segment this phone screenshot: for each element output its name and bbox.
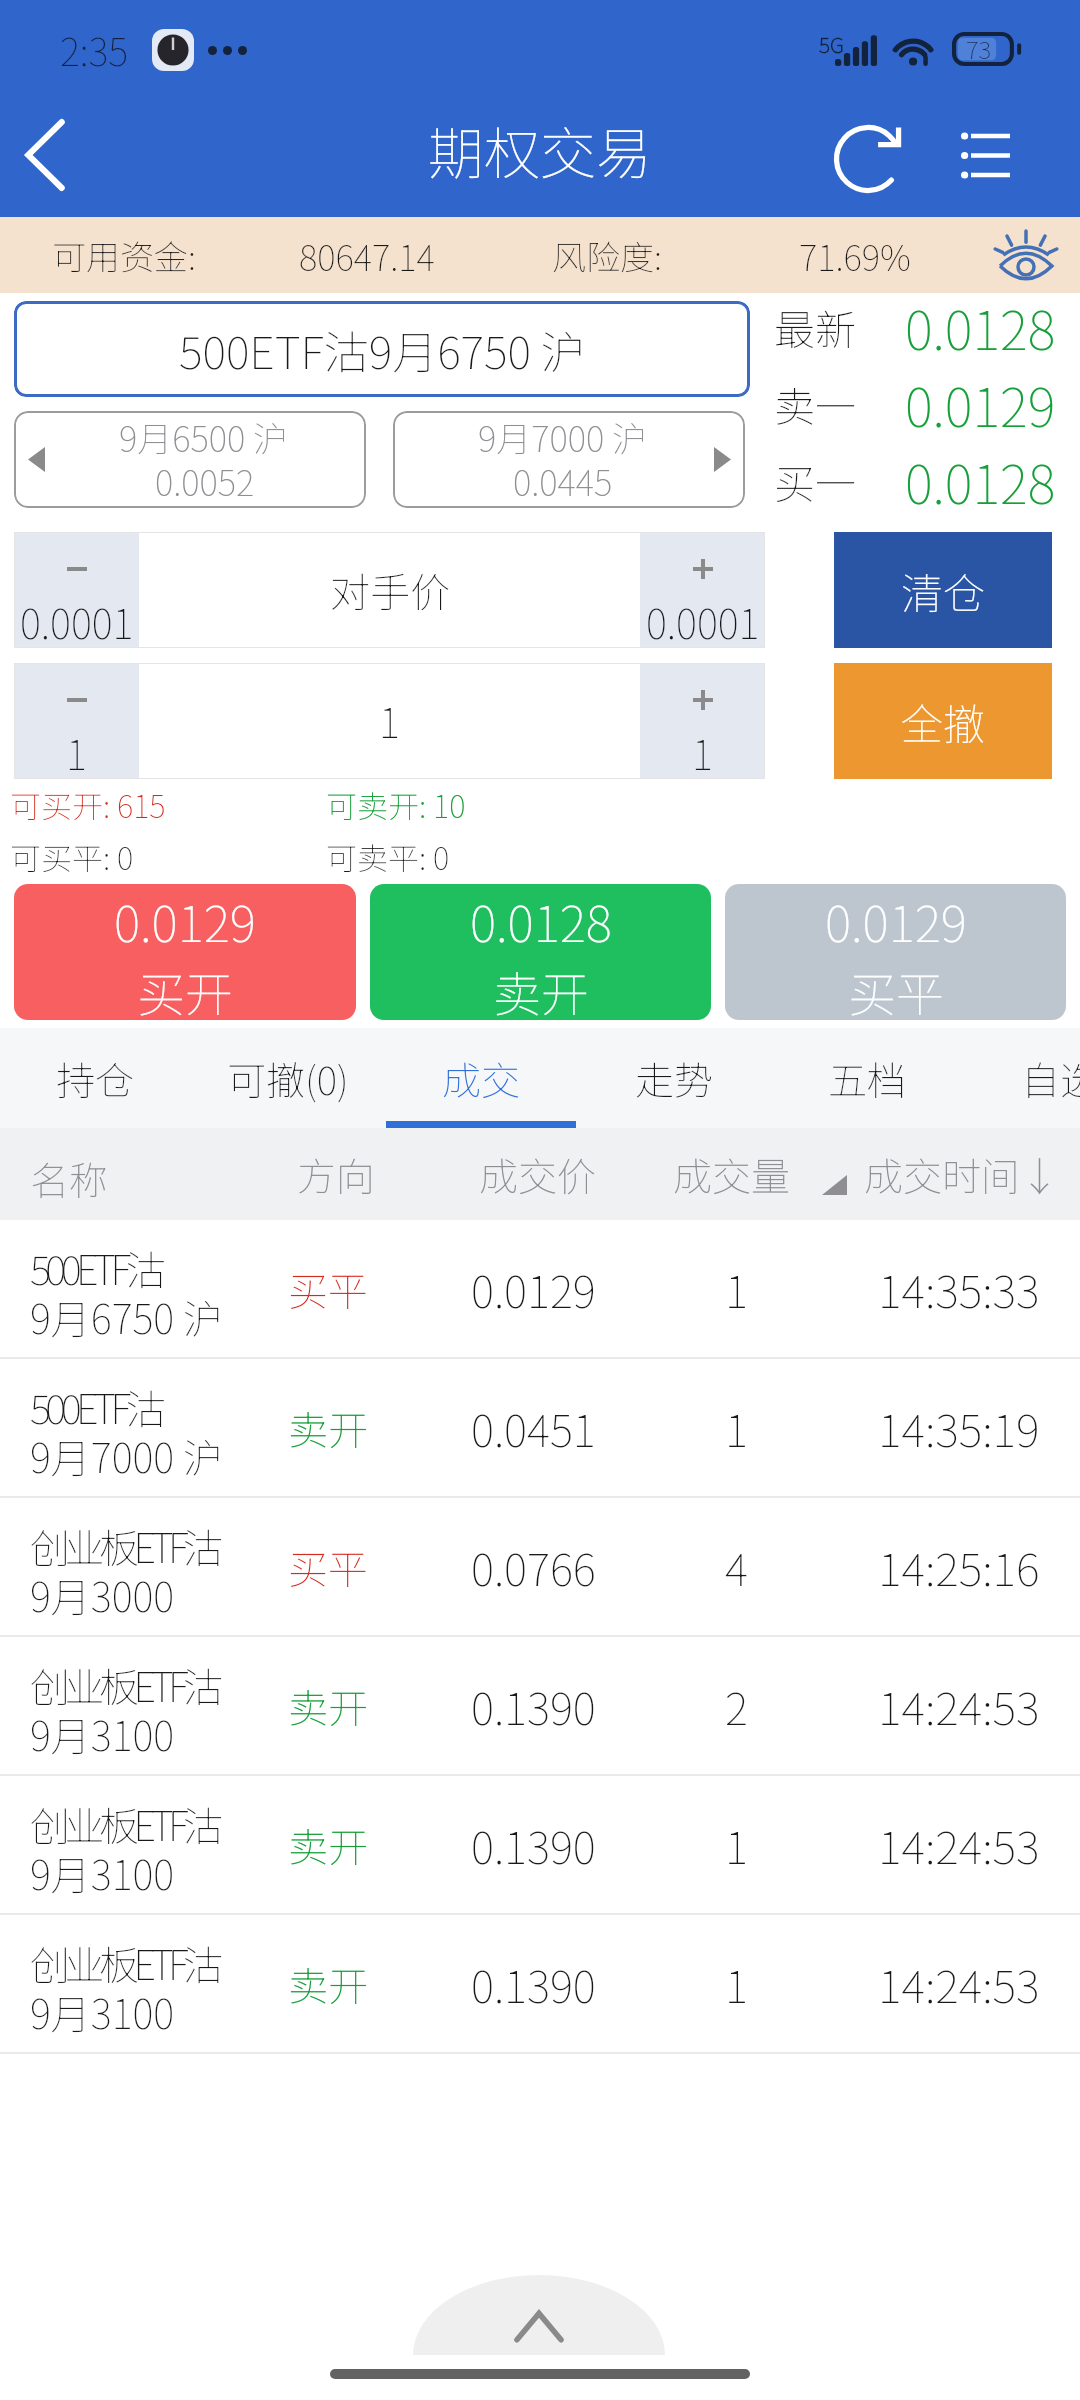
- staticText: 4: [725, 1535, 748, 1599]
- button[interactable]: 增加: [640, 663, 765, 779]
- staticText: 最新: [774, 297, 856, 356]
- staticText: 全撤: [901, 691, 986, 752]
- staticText: 风险度:: [552, 231, 662, 280]
- staticText: 0.0445: [513, 455, 613, 506]
- staticText: 2:35: [60, 22, 129, 77]
- staticText: 2: [725, 1674, 748, 1738]
- staticText: 可用资金:: [52, 231, 196, 280]
- staticText: 14:25:16: [878, 1534, 1040, 1599]
- button[interactable]: 创业板ETF沽: [0, 1498, 1080, 1635]
- staticText: 可卖平: 0: [326, 834, 450, 879]
- button[interactable]: 创业板ETF沽: [0, 1776, 1080, 1913]
- staticText: 500ETF沽: [30, 1239, 161, 1297]
- staticText: 对手价: [330, 561, 450, 619]
- staticText: 5G: [819, 29, 844, 59]
- staticText: 1: [66, 724, 87, 782]
- staticText: 1: [725, 1257, 748, 1321]
- staticText: 1: [725, 1813, 748, 1877]
- staticText: 9月6750 沪: [30, 1288, 223, 1346]
- staticText: 可卖开: 10: [326, 782, 466, 827]
- staticText: 创业板ETF沽: [30, 1934, 218, 1992]
- staticText: 自选: [1021, 1050, 1080, 1106]
- staticText: 卖开: [288, 1677, 368, 1735]
- staticText: 0.1390: [471, 1813, 596, 1877]
- staticText: 持仓: [56, 1050, 135, 1106]
- staticText: 方向: [297, 1146, 376, 1202]
- staticText: 0.0128: [470, 884, 612, 956]
- staticText: 成交价: [479, 1146, 597, 1202]
- button[interactable]: 9月7000 沪: [393, 411, 745, 508]
- button[interactable]: 菜单: [932, 100, 1038, 217]
- staticText: 0.0052: [155, 455, 255, 506]
- button[interactable]: 走势: [578, 1028, 770, 1128]
- staticText: 0.0128: [905, 443, 1056, 520]
- staticText: 1: [725, 1952, 748, 2016]
- staticText: 14:35:33: [878, 1256, 1040, 1321]
- button[interactable]: 对手价: [139, 532, 640, 648]
- staticText: 走势: [635, 1050, 714, 1106]
- staticText: 卖开: [288, 1955, 368, 2013]
- staticText: 500ETF沽9月6750 沪: [179, 317, 586, 382]
- button[interactable]: 持仓: [0, 1028, 191, 1128]
- staticText: 0.0129: [825, 884, 967, 956]
- staticText: 成交: [442, 1050, 521, 1106]
- staticText: 创业板ETF沽: [30, 1517, 218, 1575]
- button[interactable]: 五档: [771, 1028, 963, 1128]
- button[interactable]: 全撤: [834, 663, 1052, 779]
- button[interactable]: 500ETF沽9月6750 沪: [14, 301, 750, 397]
- staticText: 五档: [828, 1050, 907, 1106]
- button[interactable]: 返回: [0, 100, 90, 217]
- button[interactable]: 9月6500 沪: [14, 411, 366, 508]
- button[interactable]: 显示或隐藏资金: [978, 217, 1074, 293]
- button[interactable]: 自选: [964, 1028, 1080, 1128]
- button[interactable]: 500ETF沽: [0, 1359, 1080, 1496]
- staticText: 9月6500 沪: [119, 411, 288, 462]
- staticText: 1: [379, 692, 400, 750]
- staticText: 1: [692, 724, 713, 782]
- button[interactable]: 创业板ETF沽: [0, 1915, 1080, 2052]
- button[interactable]: 刷新: [816, 107, 920, 211]
- staticText: 9月3100: [30, 1983, 175, 2041]
- button[interactable]: 减少: [14, 663, 139, 779]
- button[interactable]: 0.0129: [725, 884, 1066, 1020]
- button[interactable]: 减少: [14, 532, 139, 648]
- button[interactable]: 展开面板: [413, 2275, 665, 2355]
- staticText: 1: [725, 1396, 748, 1460]
- staticText: 14:35:19: [878, 1395, 1040, 1460]
- staticText: 0.1390: [471, 1674, 596, 1738]
- staticText: 创业板ETF沽: [30, 1795, 218, 1853]
- staticText: 可撤(0): [227, 1050, 349, 1106]
- staticText: 买平: [848, 956, 945, 1020]
- staticText: 0.0129: [471, 1257, 596, 1321]
- staticText: 期权交易: [428, 109, 652, 190]
- staticText: 80647.14: [299, 230, 435, 281]
- button[interactable]: 0.0128: [370, 884, 711, 1020]
- staticText: 成交时间↓: [864, 1146, 1060, 1202]
- staticText: 14:24:53: [878, 1673, 1040, 1738]
- staticText: 买平: [288, 1260, 368, 1318]
- staticText: 9月3000: [30, 1566, 175, 1624]
- button[interactable]: 可撤(0): [192, 1028, 384, 1128]
- staticText: 9月3100: [30, 1705, 175, 1763]
- staticText: 卖开: [493, 956, 590, 1020]
- button[interactable]: 创业板ETF沽: [0, 1637, 1080, 1774]
- staticText: 卖开: [288, 1816, 368, 1874]
- staticText: 卖开: [288, 1399, 368, 1457]
- staticText: 买平: [288, 1538, 368, 1596]
- staticText: 500ETF沽: [30, 1378, 161, 1436]
- staticText: 可买平: 0: [10, 834, 134, 879]
- staticText: 0.1390: [471, 1952, 596, 2016]
- staticText: 可买开: 615: [10, 782, 166, 827]
- staticText: 9月7000 沪: [478, 411, 647, 462]
- button[interactable]: 增加: [640, 532, 765, 648]
- staticText: 14:24:53: [878, 1951, 1040, 2016]
- button[interactable]: 500ETF沽: [0, 1220, 1080, 1357]
- button[interactable]: 0.0129: [14, 884, 356, 1020]
- button[interactable]: 清仓: [834, 532, 1052, 648]
- button[interactable]: 1: [139, 663, 640, 779]
- staticText: 0.0129: [114, 884, 256, 956]
- staticText: 卖一: [774, 374, 856, 433]
- staticText: 9月3100: [30, 1844, 175, 1902]
- button[interactable]: 成交: [385, 1028, 577, 1128]
- staticText: 0.0001: [20, 593, 134, 651]
